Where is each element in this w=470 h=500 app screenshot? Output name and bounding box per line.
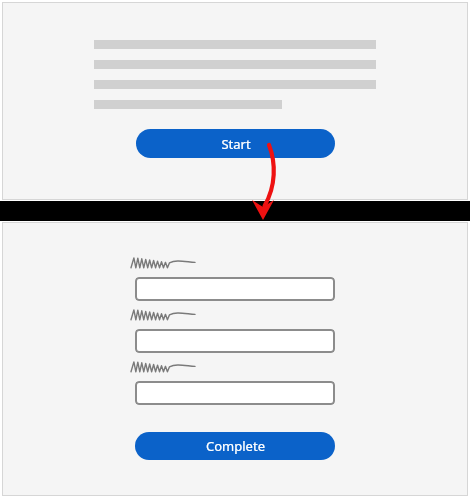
button[interactable]: Start [136, 129, 335, 158]
button[interactable]: Text input field [135, 329, 335, 353]
staticText: Complete [206, 437, 265, 455]
button[interactable]: Complete [135, 432, 335, 460]
button[interactable]: Text input field [135, 381, 335, 405]
staticText: Start [221, 135, 251, 153]
button[interactable]: Text input field [135, 277, 335, 301]
